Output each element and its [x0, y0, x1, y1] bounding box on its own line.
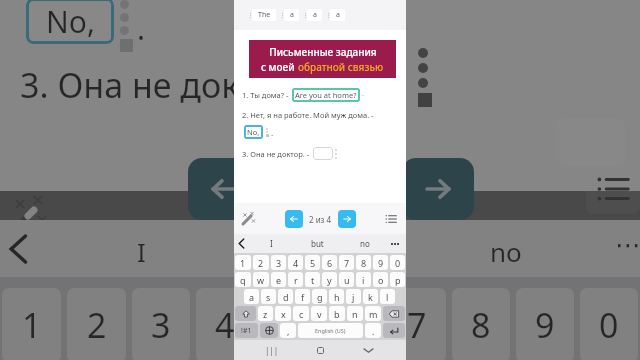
button[interactable]: e	[271, 272, 286, 287]
button[interactable]: Symbols	[235, 323, 258, 338]
button[interactable]: Hide keyboard	[344, 346, 392, 355]
button[interactable]: Next	[402, 158, 474, 220]
button[interactable]: 5	[305, 255, 320, 270]
staticText: x	[281, 308, 286, 320]
button[interactable]: n	[347, 306, 363, 321]
button[interactable]: t	[305, 272, 320, 287]
button[interactable]: 8	[356, 255, 371, 270]
staticText: z	[263, 308, 268, 320]
staticText: 1. Ты дома? -	[242, 90, 289, 100]
button[interactable]: b	[329, 306, 345, 321]
button[interactable]: q	[235, 272, 251, 287]
button[interactable]: m	[365, 306, 381, 321]
button[interactable]: 2	[253, 255, 269, 270]
button[interactable]: Backspace	[383, 306, 405, 321]
button[interactable]: v	[311, 306, 327, 321]
staticText: 4	[293, 257, 299, 269]
button[interactable]: 7	[339, 255, 354, 270]
button[interactable]: w	[253, 272, 269, 287]
button[interactable]: .	[365, 323, 381, 338]
button[interactable]: x	[275, 306, 291, 321]
button[interactable]: Enter	[383, 323, 405, 338]
button[interactable]: p	[390, 272, 405, 287]
staticText: .	[372, 325, 375, 337]
button[interactable]: j	[346, 289, 361, 304]
staticText: 0	[395, 257, 401, 269]
staticText: o	[378, 274, 384, 286]
button[interactable]: g	[312, 289, 327, 304]
staticText: .	[271, 127, 274, 138]
button[interactable]: 1	[235, 255, 251, 270]
button[interactable]: Home	[296, 347, 344, 354]
button[interactable]: 0	[390, 255, 405, 270]
staticText: |||	[265, 345, 279, 356]
staticText: l	[386, 291, 389, 303]
button[interactable]: I	[248, 238, 294, 249]
button[interactable]: o	[373, 272, 388, 287]
button[interactable]: u	[339, 272, 354, 287]
button[interactable]: but	[294, 238, 341, 249]
staticText: no	[360, 238, 370, 249]
button[interactable]: 9	[373, 255, 388, 270]
staticText: 5	[310, 257, 316, 269]
button[interactable]: Previous	[188, 158, 260, 220]
staticText: but	[311, 238, 324, 249]
staticText: 2	[87, 302, 107, 348]
button[interactable]: Письменные задания	[249, 40, 396, 78]
button[interactable]: Next page	[338, 210, 356, 228]
staticText: Письменные задания	[269, 45, 377, 59]
staticText: u	[344, 274, 350, 286]
button[interactable]: no	[341, 238, 388, 249]
staticText: No,	[247, 127, 260, 137]
button[interactable]: y	[322, 272, 337, 287]
staticText: d	[283, 291, 289, 303]
staticText: v	[317, 308, 322, 320]
button[interactable]: k	[363, 289, 378, 304]
button[interactable]: l	[380, 289, 395, 304]
staticText: 3. Она не доктор. -	[242, 149, 310, 159]
button[interactable]: 6	[322, 255, 337, 270]
staticText: k	[368, 291, 373, 303]
button[interactable]: Magic	[238, 209, 258, 229]
button[interactable]: Language	[260, 323, 278, 338]
staticText: 2	[258, 257, 264, 269]
button[interactable]: More	[388, 243, 402, 245]
button[interactable]: English (US)	[298, 323, 363, 338]
button[interactable]: i	[356, 272, 371, 287]
button[interactable]: r	[288, 272, 303, 287]
button[interactable]: 4	[288, 255, 303, 270]
button[interactable]: a	[307, 9, 322, 21]
button[interactable]: f	[295, 289, 310, 304]
button[interactable]: Recents	[248, 345, 296, 356]
button[interactable]: ,	[280, 323, 296, 338]
staticText: 6	[327, 257, 333, 269]
staticText: 6	[343, 302, 363, 348]
staticText: h	[334, 291, 340, 303]
button[interactable]: d	[278, 289, 293, 304]
button[interactable]: h	[329, 289, 344, 304]
staticText: 1	[240, 257, 246, 269]
button[interactable]: Are you at home?	[295, 90, 357, 100]
staticText: 3	[276, 257, 282, 269]
button[interactable]: List	[381, 209, 401, 229]
button[interactable]: a	[284, 9, 299, 21]
staticText: 9	[535, 302, 555, 348]
button[interactable]: s	[261, 289, 276, 304]
button[interactable]: 3	[271, 255, 286, 270]
button[interactable]: Menu	[586, 164, 640, 214]
staticText: w	[257, 274, 265, 286]
staticText: n	[352, 308, 358, 320]
button[interactable]	[313, 147, 333, 160]
staticText: f	[301, 291, 305, 303]
staticText: 9	[378, 257, 384, 269]
button[interactable]: a	[244, 289, 259, 304]
button[interactable]: z	[258, 306, 273, 321]
button[interactable]: The	[252, 9, 276, 21]
button[interactable]: a	[330, 9, 345, 21]
button[interactable]: Previous page	[285, 210, 303, 228]
button[interactable]: Shift	[235, 306, 256, 321]
button[interactable]: No,	[247, 127, 260, 137]
button[interactable]: c	[293, 306, 309, 321]
staticText: с моей	[261, 60, 298, 74]
staticText: 5	[279, 302, 299, 348]
